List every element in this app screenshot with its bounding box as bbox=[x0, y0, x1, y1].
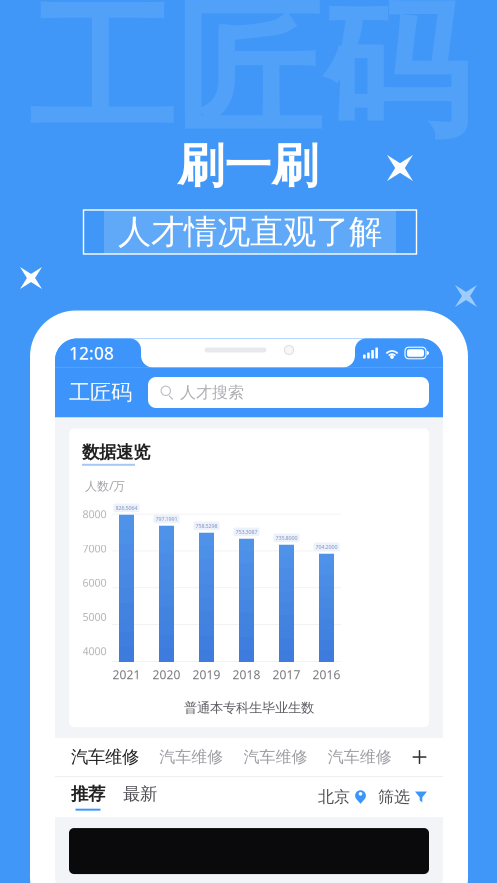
button[interactable]: 最新 bbox=[123, 783, 157, 811]
staticText: 汽车维修 bbox=[328, 747, 392, 767]
button[interactable]: 汽车维修 bbox=[328, 747, 392, 767]
staticText: 797.1991 bbox=[155, 515, 177, 522]
button[interactable]: 汽车维修 bbox=[71, 746, 139, 768]
staticText: 5000 bbox=[82, 610, 106, 624]
staticText: 2019 bbox=[192, 667, 220, 683]
button[interactable]: 推荐 bbox=[71, 783, 105, 811]
staticText: 北京 bbox=[318, 787, 350, 807]
button[interactable]: 工匠码 bbox=[69, 379, 132, 406]
staticText: 8000 bbox=[82, 507, 106, 521]
staticText: 4000 bbox=[82, 644, 106, 658]
staticText: 筛选 bbox=[378, 787, 410, 807]
button[interactable]: 汽车维修 bbox=[243, 747, 307, 767]
staticText: 12:08 bbox=[69, 341, 114, 364]
staticText: 2018 bbox=[232, 667, 260, 683]
staticText: 2021 bbox=[112, 667, 140, 683]
staticText: 人才情况直观了解 bbox=[118, 211, 382, 252]
staticText: 最新 bbox=[123, 783, 157, 805]
staticText: 推荐 bbox=[71, 783, 105, 805]
staticText: 工匠码 bbox=[69, 379, 132, 406]
staticText: 2017 bbox=[272, 667, 300, 683]
staticText: 2016 bbox=[312, 667, 340, 683]
button[interactable]: 汽车维修 bbox=[159, 747, 223, 767]
staticText: 2020 bbox=[152, 667, 180, 683]
staticText: 753.3087 bbox=[235, 528, 257, 535]
button[interactable]: Add category bbox=[412, 749, 427, 764]
staticText: 普通本专科生毕业生数 bbox=[184, 700, 314, 716]
button[interactable]: 筛选 bbox=[378, 787, 427, 807]
staticText: 汽车维修 bbox=[243, 747, 307, 767]
staticText: 数据速览 bbox=[82, 441, 150, 463]
button[interactable]: 人才搜索 bbox=[148, 377, 429, 408]
staticText: 826.5064 bbox=[115, 504, 137, 511]
staticText: 汽车维修 bbox=[159, 747, 223, 767]
staticText: 刷一刷 bbox=[177, 137, 318, 195]
staticText: 6000 bbox=[82, 576, 106, 590]
staticText: 758.5298 bbox=[195, 522, 217, 529]
staticText: 人才搜索 bbox=[180, 383, 244, 402]
staticText: 工匠码 bbox=[28, 0, 469, 162]
staticText: 735.8000 bbox=[275, 534, 297, 541]
button[interactable]: 北京 bbox=[318, 787, 366, 807]
staticText: 7000 bbox=[82, 541, 106, 556]
staticText: 人数/万 bbox=[85, 478, 125, 494]
staticText: 汽车维修 bbox=[71, 746, 139, 768]
staticText: 704.2000 bbox=[315, 543, 337, 550]
